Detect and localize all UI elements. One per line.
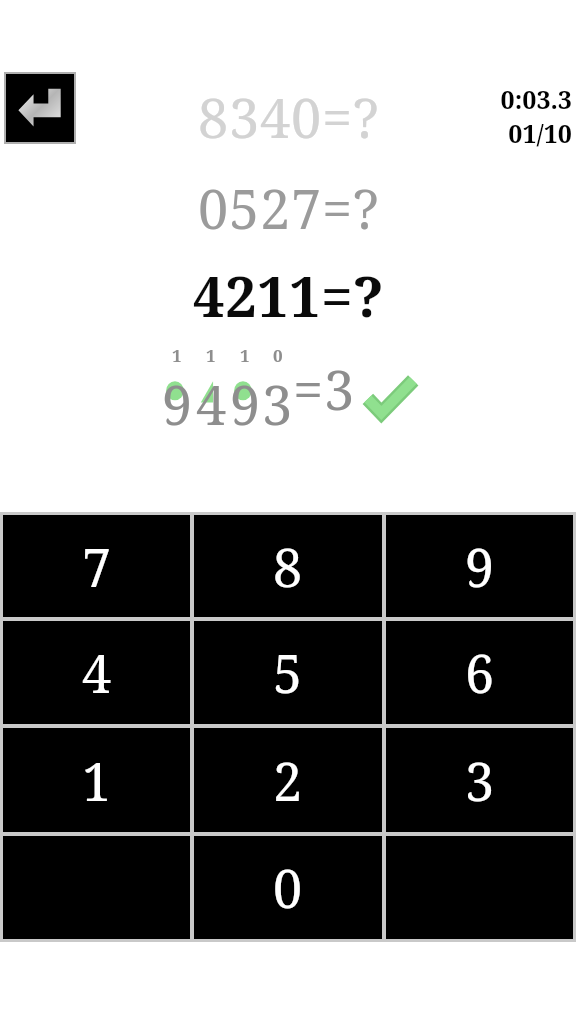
staticText: 4 bbox=[82, 637, 112, 708]
staticText: 0 bbox=[198, 171, 229, 245]
staticText: 5 bbox=[229, 171, 260, 245]
staticText: 0 bbox=[291, 80, 322, 154]
staticText: = bbox=[322, 171, 353, 245]
staticText: = bbox=[293, 352, 324, 426]
button[interactable]: 7 bbox=[3, 515, 190, 617]
staticText: 3 bbox=[229, 80, 260, 154]
staticText: ? bbox=[353, 80, 379, 154]
staticText: 0 bbox=[273, 852, 303, 923]
button[interactable]: 4 bbox=[3, 621, 190, 724]
staticText: 8 bbox=[273, 531, 303, 602]
staticText: 6 bbox=[465, 637, 495, 708]
button[interactable]: 6 bbox=[386, 621, 573, 724]
staticText: 3 bbox=[324, 352, 355, 426]
staticText: 9 bbox=[230, 367, 261, 426]
staticText: 2 bbox=[273, 745, 303, 816]
button[interactable]: 5 bbox=[194, 621, 382, 724]
staticText: 1 bbox=[172, 344, 182, 367]
staticText: 1 bbox=[257, 257, 289, 333]
staticText: 1 bbox=[82, 745, 112, 816]
staticText: 2 bbox=[225, 257, 257, 333]
staticText: 0:03.3 bbox=[500, 82, 572, 116]
staticText: 2 bbox=[260, 171, 291, 245]
staticText: 4 bbox=[260, 80, 291, 154]
staticText: 4 bbox=[196, 367, 227, 426]
button[interactable]: 0 bbox=[194, 836, 382, 939]
staticText: 7 bbox=[291, 171, 322, 245]
button[interactable]: 8 bbox=[194, 515, 382, 617]
staticText: ? bbox=[353, 257, 384, 333]
button[interactable]: Back bbox=[4, 72, 76, 144]
staticText: 3 bbox=[465, 745, 495, 816]
button[interactable]: 1 bbox=[3, 728, 190, 832]
staticText: 01/10 bbox=[508, 116, 572, 150]
staticText: 7 bbox=[82, 531, 112, 602]
staticText: 1 bbox=[240, 344, 250, 367]
staticText: 9 bbox=[162, 367, 193, 426]
staticText: 1 bbox=[206, 344, 216, 367]
staticText: 8 bbox=[198, 80, 229, 154]
staticText: 5 bbox=[273, 637, 303, 708]
button[interactable]: 9 bbox=[386, 515, 573, 617]
staticText: 4 bbox=[193, 257, 225, 333]
button[interactable]: 2 bbox=[194, 728, 382, 832]
staticText: ? bbox=[353, 171, 379, 245]
staticText: = bbox=[322, 80, 353, 154]
staticText: 0 bbox=[273, 344, 283, 367]
staticText: 9 bbox=[465, 531, 495, 602]
staticText: 1 bbox=[289, 257, 321, 333]
staticText: 3 bbox=[262, 367, 293, 426]
staticText: = bbox=[321, 257, 353, 333]
button[interactable]: 3 bbox=[386, 728, 573, 832]
